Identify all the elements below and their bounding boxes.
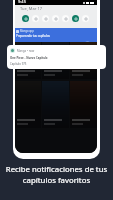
- button[interactable]: Manga poster: [15, 81, 41, 128]
- button[interactable]: Manga • now: [7, 45, 106, 69]
- button[interactable]: Expand: [85, 41, 90, 46]
- button[interactable]: Quick setting enabled: [22, 15, 29, 22]
- button[interactable]: Quick setting: [42, 15, 49, 22]
- button[interactable]: Quick setting: [32, 15, 39, 22]
- button[interactable]: Manga poster: [15, 42, 41, 79]
- button[interactable]: Quick setting: [52, 15, 59, 22]
- button[interactable]: Quick setting: [82, 15, 89, 22]
- button[interactable]: Manga poster: [42, 42, 69, 79]
- staticText: Manga app: [20, 29, 34, 33]
- staticText: Manga • now: [17, 49, 35, 53]
- button[interactable]: Manga poster: [70, 42, 97, 79]
- button[interactable]: Quick setting enabled: [72, 15, 79, 22]
- button[interactable]: Manga poster: [70, 81, 97, 128]
- staticText: 9:45: [18, 0, 26, 4]
- staticText: Tue, Mar 17: [20, 6, 43, 11]
- staticText: Capítulo 975: [10, 62, 27, 66]
- staticText: One Piece - Nuevo Capítulo: [10, 56, 48, 60]
- button[interactable]: Quick setting: [62, 15, 69, 22]
- staticText: Preparando tus capítulos: [16, 34, 50, 38]
- button[interactable]: Manga poster: [42, 81, 69, 128]
- staticText: Recibe notificaciones de tus capítulos f…: [0, 164, 113, 185]
